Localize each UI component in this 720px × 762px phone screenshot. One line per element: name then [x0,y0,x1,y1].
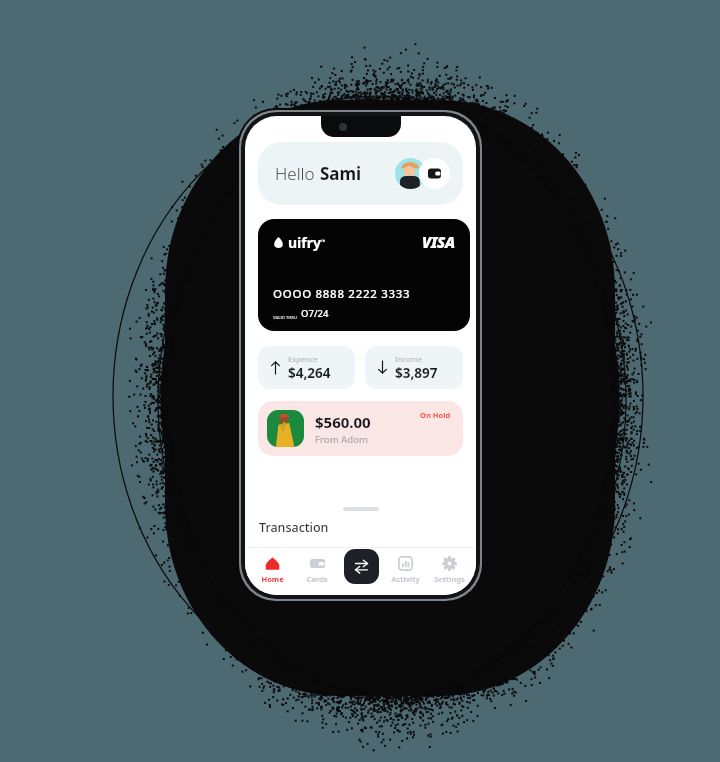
button[interactable]: uifry [258,219,470,331]
staticText: Cards [306,574,328,584]
button[interactable]: Hello [258,142,463,205]
staticText: VISA [422,232,455,252]
staticText: uifry [288,233,321,252]
staticText: Transaction [259,519,329,536]
staticText: Income [395,354,423,364]
button[interactable]: Activity [383,548,427,595]
staticText: Activity [391,574,420,584]
staticText: VALID THRU [273,315,297,320]
staticText: Sami [320,162,362,185]
button[interactable]: Settings [427,548,471,595]
staticText: Expence [288,354,318,364]
staticText: Settings [434,574,465,584]
button[interactable]: $560.00 [258,401,463,456]
staticText: ™ [321,238,326,246]
staticText: From Adom [315,433,369,446]
button[interactable]: Expence [258,346,355,389]
staticText: O7/24 [301,307,329,320]
staticText: OOOO 8888 2222 3333 [273,286,411,302]
button[interactable]: Income [365,346,463,389]
staticText: $4,264 [288,364,331,382]
staticText: $3,897 [395,364,438,382]
staticText: $560.00 [315,412,371,432]
staticText: Home [261,574,284,584]
button[interactable]: Transfer [344,549,379,584]
button[interactable]: Home [250,548,295,595]
staticText: On Hold [420,410,451,420]
button[interactable]: Profile [395,158,450,189]
button[interactable]: Cards [295,548,339,595]
staticText: Hello [275,162,320,185]
